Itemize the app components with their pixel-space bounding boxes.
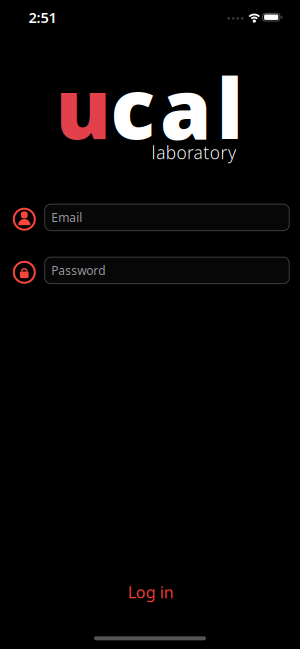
staticText: cal bbox=[110, 52, 243, 162]
staticText: 2:51 bbox=[28, 8, 56, 27]
button[interactable]: Email bbox=[44, 204, 290, 231]
staticText: Email bbox=[51, 209, 82, 225]
staticText: laboratory bbox=[152, 141, 236, 164]
button[interactable]: Password bbox=[44, 257, 290, 284]
staticText: Password bbox=[51, 262, 105, 278]
staticText: u bbox=[55, 52, 110, 162]
staticText: Log in bbox=[128, 581, 174, 603]
button[interactable]: Log in bbox=[128, 581, 174, 603]
